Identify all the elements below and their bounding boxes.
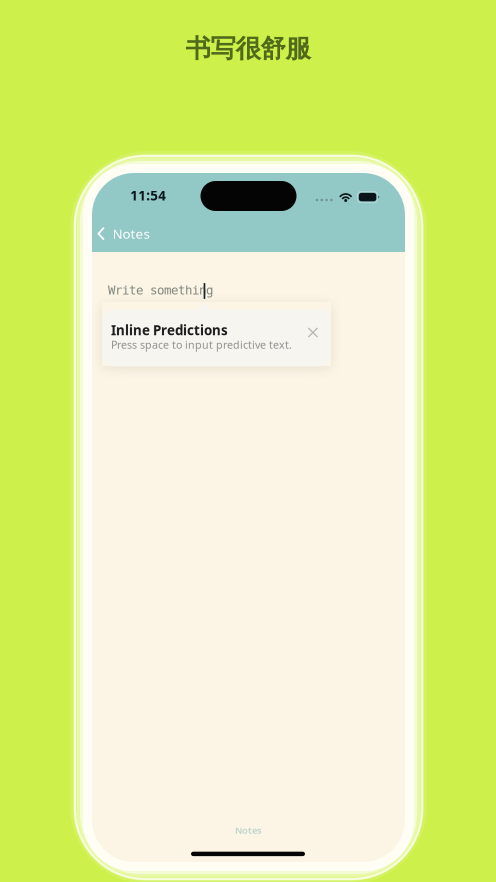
staticText: Notes [112, 225, 149, 242]
staticText: Notes [235, 824, 262, 836]
staticText: 书写很舒服 [185, 33, 310, 64]
button[interactable]: Notes [225, 820, 272, 840]
button[interactable]: Notes [91, 218, 155, 249]
staticText: Write something [108, 283, 213, 297]
button[interactable]: Dismiss [302, 322, 323, 343]
staticText: Inline Predictions [111, 321, 228, 339]
staticText: Press space to input predictive text. [111, 338, 292, 352]
staticText: 11:54 [130, 186, 166, 204]
